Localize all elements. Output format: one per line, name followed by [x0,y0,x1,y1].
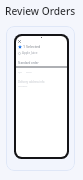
button[interactable]: Close [18,40,21,43]
staticText: Apple Juice [22,51,38,55]
staticText: 1 Selected [23,44,41,49]
button[interactable]: Starred order [18,44,64,49]
other: Starred order [18,45,22,49]
staticText: Qty [18,70,22,73]
staticText: Delivery address info [18,80,45,84]
staticText: Price [26,70,32,73]
staticText: Standard order [18,61,39,65]
staticText: Review Orders [5,4,76,18]
staticText: Contact [18,84,28,87]
